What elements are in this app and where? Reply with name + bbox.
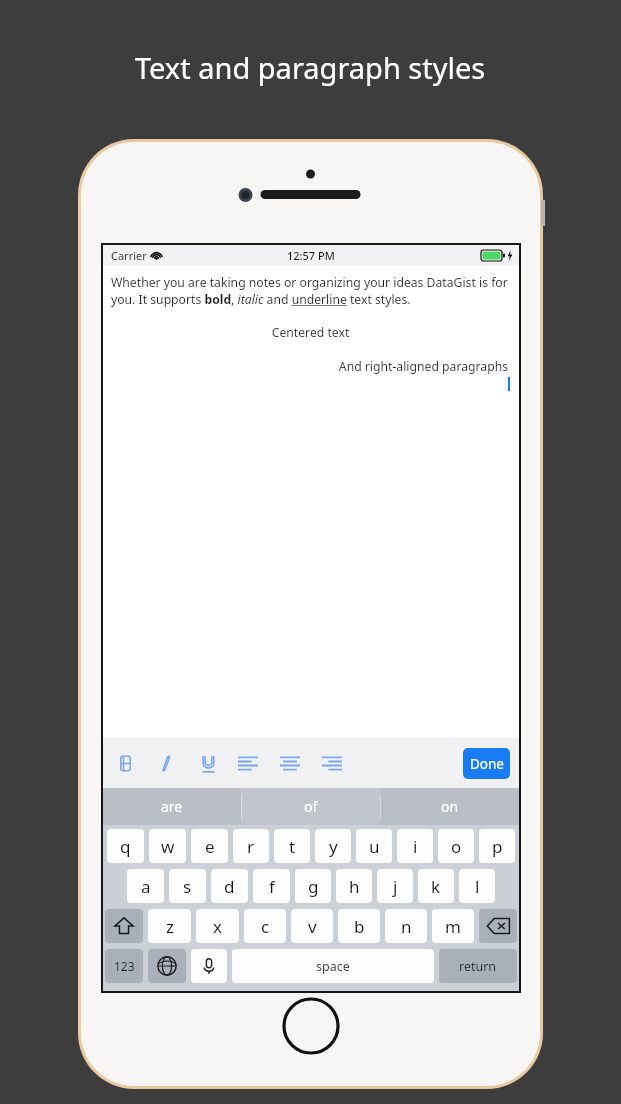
button[interactable]: s xyxy=(169,869,206,903)
staticText: g xyxy=(308,875,319,898)
button[interactable]: w xyxy=(149,829,186,863)
staticText: Text and paragraph styles xyxy=(135,48,486,87)
staticText: return xyxy=(459,958,497,975)
staticText: Done xyxy=(470,755,504,773)
button[interactable]: n xyxy=(385,909,427,943)
staticText: a xyxy=(141,875,151,898)
staticText: k xyxy=(431,875,441,898)
button[interactable]: r xyxy=(233,829,269,863)
staticText: v xyxy=(308,915,317,938)
staticText: b xyxy=(354,915,365,938)
staticText: q xyxy=(120,835,131,858)
button[interactable]: Align center xyxy=(280,755,300,772)
button[interactable]: v xyxy=(291,909,333,943)
staticText: j xyxy=(393,875,398,898)
button[interactable]: Change keyboard xyxy=(148,949,186,983)
button[interactable]: of xyxy=(241,788,380,825)
staticText: And right-aligned paragraphs xyxy=(111,358,508,375)
staticText: Carrier xyxy=(111,248,147,263)
button[interactable]: Align right xyxy=(322,755,342,772)
staticText: m xyxy=(445,915,461,938)
staticText: space xyxy=(316,958,350,975)
staticText: of xyxy=(304,797,318,816)
button[interactable]: k xyxy=(418,869,454,903)
button[interactable]: j xyxy=(377,869,413,903)
staticText: z xyxy=(166,915,174,938)
button[interactable]: are xyxy=(103,788,241,825)
staticText: o xyxy=(451,835,462,858)
button[interactable]: m xyxy=(432,909,474,943)
button[interactable]: 123 xyxy=(105,949,143,983)
button[interactable]: a xyxy=(127,869,164,903)
button[interactable]: f xyxy=(253,869,290,903)
staticText: s xyxy=(183,875,192,898)
staticText: f xyxy=(269,875,275,898)
button[interactable]: o xyxy=(438,829,474,863)
staticText: on xyxy=(441,797,459,816)
button[interactable]: Underline xyxy=(199,754,218,773)
button[interactable]: p xyxy=(479,829,515,863)
staticText: u xyxy=(369,835,380,858)
staticText: r xyxy=(247,835,255,858)
button[interactable]: b xyxy=(338,909,380,943)
button[interactable]: Backspace xyxy=(479,909,517,943)
button[interactable]: Italic xyxy=(158,754,177,773)
staticText: p xyxy=(492,835,503,858)
button[interactable]: Align left xyxy=(238,755,258,772)
button[interactable]: on xyxy=(380,788,519,825)
button[interactable]: e xyxy=(191,829,228,863)
button[interactable]: x xyxy=(196,909,239,943)
staticText: n xyxy=(401,915,412,938)
button[interactable]: space xyxy=(232,949,434,983)
staticText: i xyxy=(413,835,418,858)
staticText: t xyxy=(289,835,296,858)
button[interactable]: return xyxy=(439,949,517,983)
staticText: are xyxy=(161,797,183,816)
staticText: y xyxy=(329,835,338,858)
staticText: h xyxy=(349,875,360,898)
staticText: Centered text xyxy=(111,324,510,341)
button[interactable]: h xyxy=(336,869,372,903)
staticText: c xyxy=(261,915,270,938)
staticText: l xyxy=(475,875,480,898)
staticText: 12:57 PM xyxy=(287,248,335,263)
staticText: x xyxy=(213,915,222,938)
staticText: Whether you are taking notes or organizi… xyxy=(111,274,510,308)
button[interactable]: i xyxy=(397,829,433,863)
button[interactable]: y xyxy=(315,829,351,863)
button[interactable]: q xyxy=(107,829,144,863)
button[interactable]: u xyxy=(356,829,392,863)
button[interactable]: Done xyxy=(463,748,510,779)
button[interactable]: t xyxy=(274,829,310,863)
button[interactable]: l xyxy=(459,869,495,903)
button[interactable]: g xyxy=(295,869,331,903)
button[interactable]: Home xyxy=(282,997,340,1055)
staticText: d xyxy=(224,875,235,898)
button[interactable]: Dictate xyxy=(191,949,227,983)
button[interactable]: c xyxy=(244,909,286,943)
button[interactable]: Shift xyxy=(105,909,143,943)
button[interactable]: d xyxy=(211,869,248,903)
button[interactable]: z xyxy=(148,909,191,943)
button[interactable]: Bold xyxy=(117,754,136,773)
staticText: w xyxy=(161,835,175,858)
staticText: 123 xyxy=(114,958,135,974)
staticText: e xyxy=(205,835,215,858)
